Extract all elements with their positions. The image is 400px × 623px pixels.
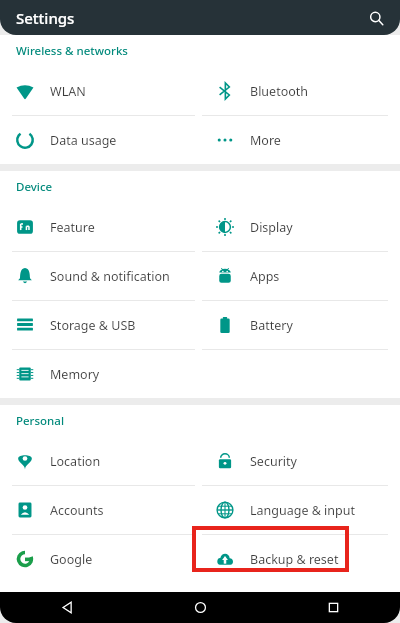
button[interactable]: WLAN [0,67,200,115]
button[interactable]: More [200,116,400,164]
button[interactable]: Bluetooth [200,67,400,115]
button[interactable]: Home [134,592,267,623]
staticText: Device [16,179,53,195]
staticText: Feature [50,219,95,236]
button[interactable]: Apps [200,252,400,300]
staticText: More [250,132,281,149]
staticText: Battery [250,317,293,334]
staticText: Data usage [50,132,117,149]
staticText: Settings [16,8,75,28]
staticText: Language & input [250,502,355,519]
staticText: Storage & USB [50,317,136,334]
button[interactable]: Backup & reset [200,535,400,583]
staticText: Wireless & networks [16,43,128,59]
button[interactable]: Storage & USB [0,301,200,349]
staticText: Bluetooth [250,83,309,100]
button[interactable]: Data usage [0,116,200,164]
button[interactable]: Security [200,437,400,485]
staticText: Backup & reset [250,551,339,568]
button[interactable]: Battery [200,301,400,349]
button[interactable]: Recents [267,592,400,623]
button[interactable]: Location [0,437,200,485]
staticText: Memory [50,366,100,383]
button[interactable]: Language & input [200,486,400,534]
staticText: Display [250,219,293,236]
staticText: Sound & notification [50,268,170,285]
staticText: Google [50,551,93,568]
button[interactable]: Accounts [0,486,200,534]
button[interactable]: Display [200,203,400,251]
staticText: Apps [250,268,280,285]
button[interactable]: Google [0,535,200,583]
button[interactable]: Back [0,592,134,623]
staticText: WLAN [50,83,86,100]
button[interactable]: Memory [0,350,200,398]
button[interactable]: Sound & notification [0,252,200,300]
staticText: Accounts [50,502,104,519]
button[interactable]: Search [364,6,388,30]
staticText: Personal [16,413,64,429]
staticText: Security [250,453,297,470]
staticText: Location [50,453,101,470]
button[interactable]: Feature [0,203,200,251]
